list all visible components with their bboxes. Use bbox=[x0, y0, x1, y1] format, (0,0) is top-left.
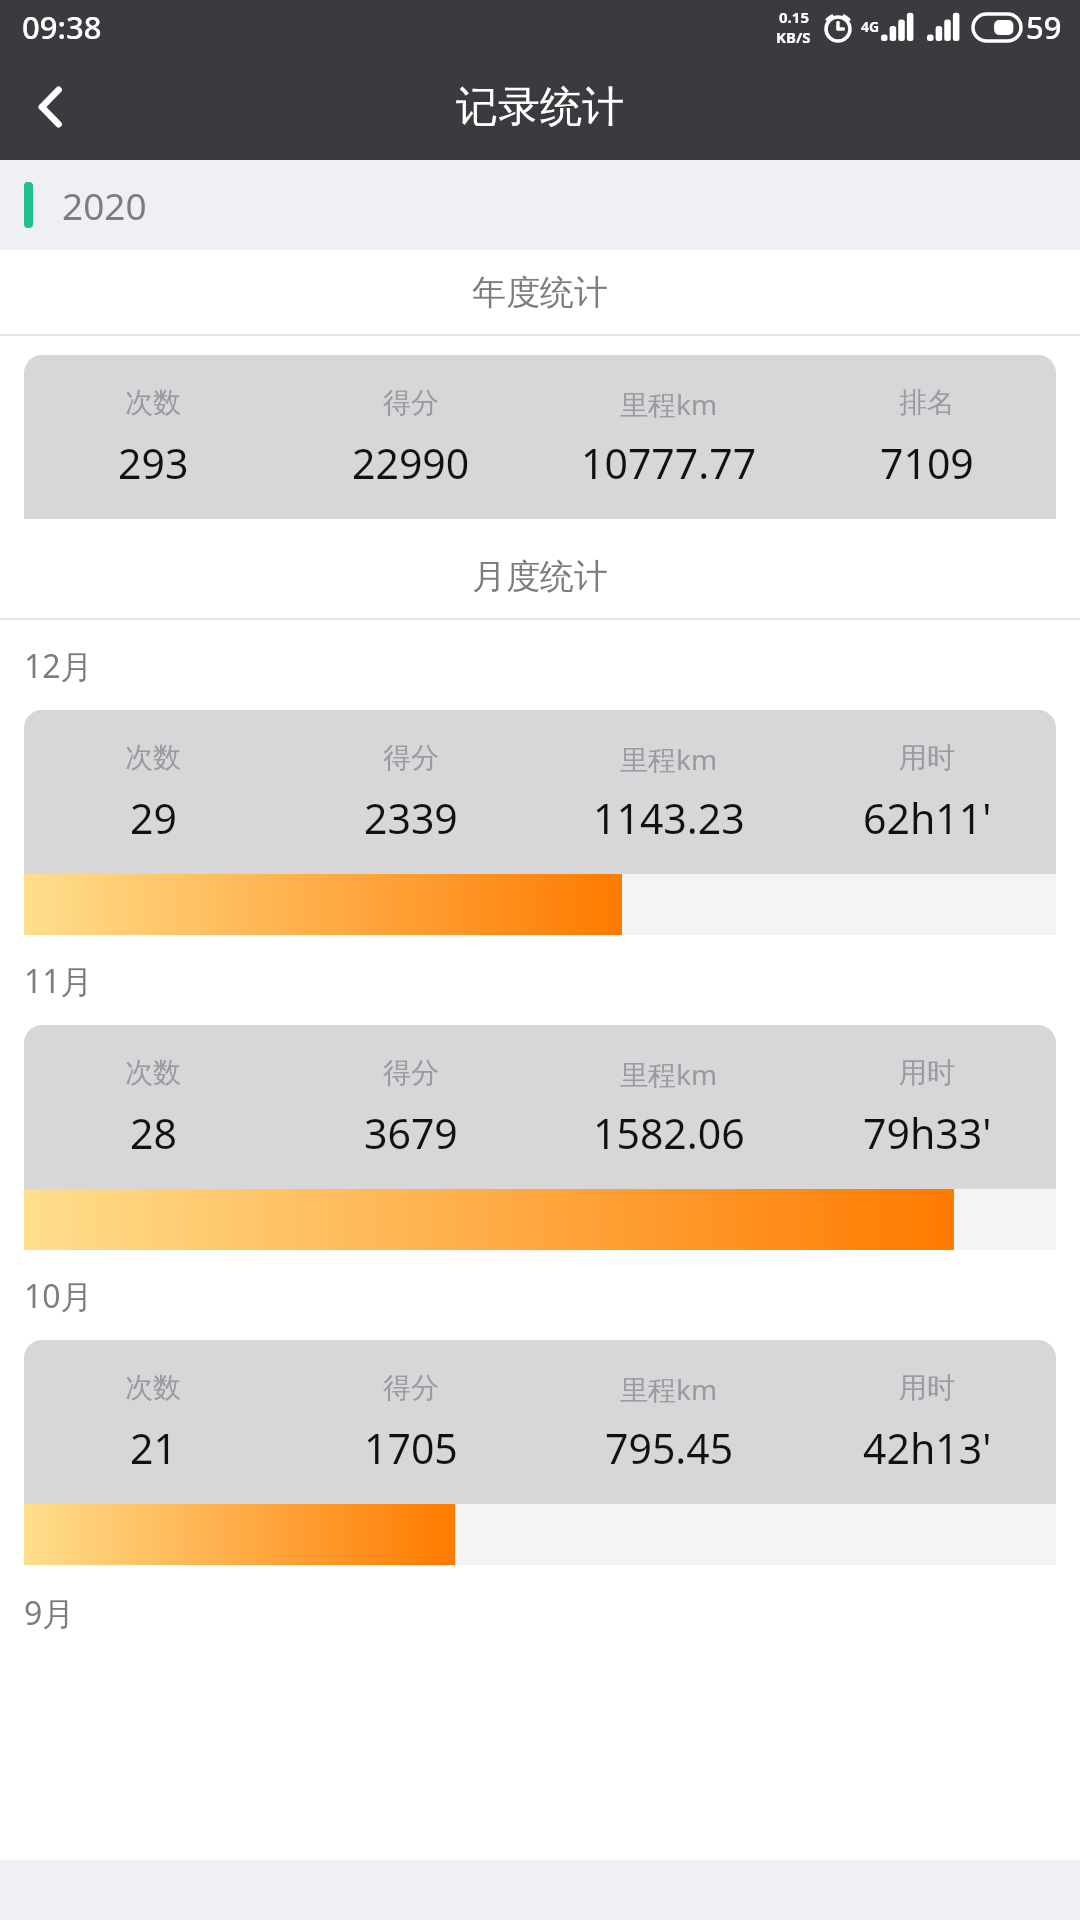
staticText: 里程km bbox=[620, 1055, 718, 1093]
staticText: 次数 bbox=[125, 385, 181, 420]
staticText: 得分 bbox=[383, 1370, 439, 1405]
staticText: 21 bbox=[130, 1420, 177, 1476]
staticText: 10月 bbox=[24, 1274, 93, 1318]
staticText: 59 bbox=[1026, 6, 1062, 48]
staticText: 12月 bbox=[24, 644, 93, 688]
staticText: 1705 bbox=[364, 1420, 458, 1476]
staticText: 2339 bbox=[364, 790, 458, 846]
staticText: 里程km bbox=[620, 1370, 718, 1408]
staticText: 9月 bbox=[24, 1591, 75, 1635]
staticText: 用时 bbox=[899, 740, 955, 775]
button[interactable]: Back bbox=[0, 57, 100, 157]
staticText: 得分 bbox=[383, 1055, 439, 1090]
staticText: 月度统计 bbox=[472, 555, 608, 598]
button[interactable]: 次数 bbox=[24, 1340, 1056, 1504]
staticText: 62h11' bbox=[863, 790, 992, 846]
staticText: 得分 bbox=[383, 385, 439, 420]
staticText: 11月 bbox=[24, 959, 93, 1003]
staticText: 09:38 bbox=[22, 6, 102, 48]
staticText: 里程km bbox=[620, 385, 718, 423]
staticText: KB/S bbox=[776, 27, 811, 47]
staticText: 7109 bbox=[880, 435, 974, 491]
staticText: 0.15 bbox=[779, 7, 809, 27]
staticText: 排名 bbox=[899, 385, 955, 420]
button[interactable]: 次数 bbox=[24, 1025, 1056, 1189]
staticText: 得分 bbox=[383, 740, 439, 775]
staticText: 次数 bbox=[125, 1055, 181, 1090]
staticText: 22990 bbox=[352, 435, 470, 491]
staticText: 79h33' bbox=[863, 1105, 992, 1161]
button[interactable]: 次数 bbox=[24, 355, 1056, 519]
staticText: 10777.77 bbox=[581, 435, 757, 491]
staticText: 次数 bbox=[125, 740, 181, 775]
staticText: 里程km bbox=[620, 740, 718, 778]
staticText: 次数 bbox=[125, 1370, 181, 1405]
staticText: 1582.06 bbox=[593, 1105, 745, 1161]
button[interactable]: 2020 bbox=[0, 160, 1080, 250]
staticText: 42h13' bbox=[863, 1420, 992, 1476]
staticText: 用时 bbox=[899, 1055, 955, 1090]
staticText: 29 bbox=[130, 790, 177, 846]
staticText: 795.45 bbox=[605, 1420, 734, 1476]
staticText: 293 bbox=[118, 435, 189, 491]
staticText: 28 bbox=[130, 1105, 177, 1161]
staticText: 用时 bbox=[899, 1370, 955, 1405]
staticText: 2020 bbox=[62, 180, 147, 230]
staticText: 记录统计 bbox=[456, 81, 624, 134]
staticText: 1143.23 bbox=[593, 790, 745, 846]
staticText: 年度统计 bbox=[472, 271, 608, 314]
button[interactable]: 次数 bbox=[24, 710, 1056, 874]
staticText: 4G bbox=[861, 17, 880, 36]
staticText: 3679 bbox=[364, 1105, 458, 1161]
